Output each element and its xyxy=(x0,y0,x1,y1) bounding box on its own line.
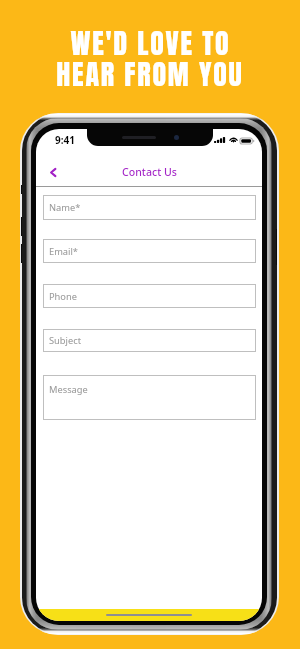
button[interactable]: Email* xyxy=(43,239,256,263)
staticText: WE'D LOVE TO xyxy=(70,22,231,64)
button[interactable]: Name* xyxy=(43,195,256,220)
staticText: Message xyxy=(49,383,88,396)
staticText: Subject xyxy=(49,334,82,347)
button[interactable]: Phone xyxy=(43,284,256,308)
button[interactable]: Contact Us xyxy=(116,163,183,181)
staticText: Contact Us xyxy=(122,165,177,179)
staticText: Email* xyxy=(49,245,78,258)
staticText: HEAR FROM YOU xyxy=(56,53,244,95)
button[interactable]: Back xyxy=(41,161,65,183)
staticText: Name* xyxy=(49,201,81,214)
button[interactable]: Subject xyxy=(43,329,256,352)
staticText: Phone xyxy=(49,290,77,303)
button[interactable]: Message xyxy=(43,375,256,420)
staticText: 9:41 xyxy=(55,133,75,147)
